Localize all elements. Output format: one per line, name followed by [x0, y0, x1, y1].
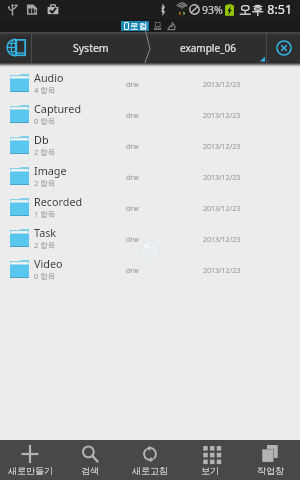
staticText: drw	[126, 80, 203, 90]
button[interactable]: Close	[267, 32, 300, 63]
button[interactable]: PC	[154, 22, 161, 30]
staticText: drw	[126, 173, 203, 183]
staticText: Captured	[34, 101, 82, 116]
staticText: 4 항목	[34, 85, 56, 95]
button[interactable]: 작업창	[240, 440, 300, 480]
button[interactable]: Db	[0, 129, 300, 160]
staticText: drw	[126, 142, 203, 152]
staticText: 2 항목	[34, 178, 56, 188]
staticText: drw	[126, 266, 203, 276]
button[interactable]: 검색	[60, 440, 120, 480]
button[interactable]: example_06	[150, 32, 266, 63]
staticText: drw	[126, 204, 203, 214]
staticText: 2013/12/23	[203, 235, 241, 245]
button[interactable]: Audio	[0, 67, 300, 98]
button[interactable]: Video	[0, 253, 300, 284]
staticText: 작업창	[257, 465, 284, 476]
button[interactable]: System	[32, 32, 150, 63]
staticText: 새로만들기	[8, 465, 53, 476]
staticText: 2013/12/23	[203, 111, 241, 121]
staticText: 0 항목	[34, 116, 56, 126]
staticText: 2013/12/23	[203, 266, 241, 276]
staticText: 2013/12/23	[203, 80, 241, 90]
staticText: 2013/12/23	[203, 142, 241, 152]
staticText: 2013/12/23	[203, 204, 241, 214]
staticText: 검색	[81, 465, 99, 476]
staticText: Video	[34, 256, 63, 271]
staticText: Db	[34, 132, 49, 147]
staticText: 0 항목	[34, 271, 56, 281]
staticText: 새로고침	[132, 465, 168, 476]
staticText: 로컬	[130, 21, 147, 31]
button[interactable]: 보기	[180, 440, 240, 480]
button[interactable]: 로컬	[121, 21, 149, 31]
button[interactable]: Captured	[0, 98, 300, 129]
staticText: 1 항목	[34, 209, 56, 219]
staticText: drw	[126, 235, 203, 245]
button[interactable]: Recorded	[0, 191, 300, 222]
staticText: 2 항목	[34, 240, 56, 250]
button[interactable]: Storage	[0, 32, 31, 63]
staticText: Task	[34, 225, 57, 240]
button[interactable]: 새로만들기	[0, 440, 60, 480]
staticText: 오후 8:51	[239, 1, 293, 18]
staticText: Recorded	[34, 194, 83, 209]
staticText: example_06	[180, 41, 236, 55]
button[interactable]: Cloud	[168, 22, 175, 30]
staticText: 보기	[201, 465, 219, 476]
staticText: drw	[126, 111, 203, 121]
staticText: Image	[34, 163, 67, 178]
staticText: Audio	[34, 70, 64, 85]
button[interactable]: 새로고침	[120, 440, 180, 480]
staticText: 2013/12/23	[203, 173, 241, 183]
button[interactable]: Task	[0, 222, 300, 253]
button[interactable]: Image	[0, 160, 300, 191]
staticText: 2 항목	[34, 147, 56, 157]
staticText: 93%	[202, 3, 223, 17]
staticText: System	[73, 41, 109, 55]
